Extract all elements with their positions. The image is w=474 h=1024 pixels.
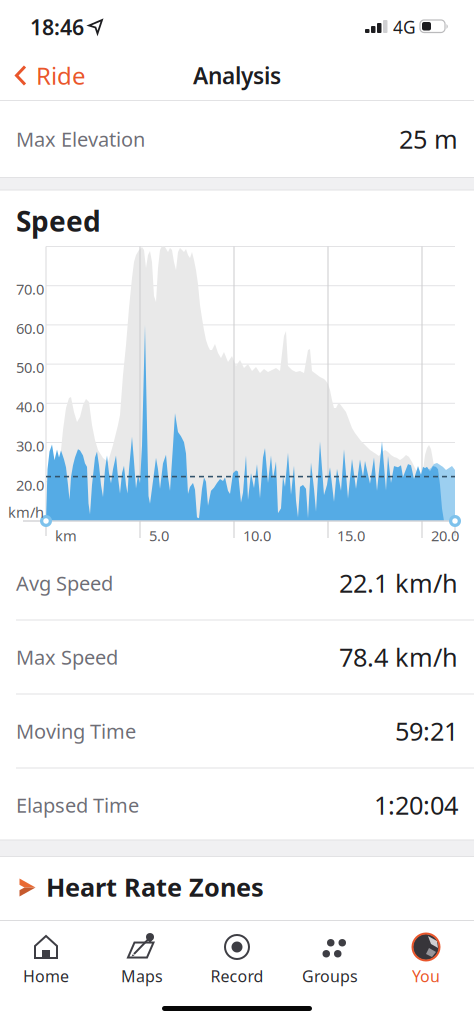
- button[interactable]: Ride: [0, 0, 110, 44]
- staticText: 10.0: [243, 526, 271, 545]
- staticText: 18:46: [30, 13, 84, 41]
- staticText: 59:21: [395, 714, 458, 748]
- staticText: 78.4 km/h: [339, 640, 458, 674]
- staticText: Max Elevation: [16, 126, 145, 152]
- staticText: Maps: [121, 965, 163, 987]
- staticText: Record: [210, 965, 263, 987]
- staticText: Ride: [36, 60, 86, 91]
- staticText: Analysis: [193, 60, 281, 90]
- staticText: 20.0: [431, 526, 459, 545]
- staticText: Moving Time: [16, 718, 136, 744]
- staticText: 50.0: [16, 358, 44, 377]
- staticText: 22.1 km/h: [339, 566, 458, 600]
- staticText: 5.0: [149, 526, 169, 545]
- staticText: 4G: [393, 15, 416, 38]
- staticText: 15.0: [337, 526, 365, 545]
- staticText: Groups: [302, 965, 358, 987]
- staticText: km: [55, 526, 77, 545]
- staticText: Speed: [16, 202, 101, 240]
- staticText: Avg Speed: [16, 570, 113, 596]
- staticText: Home: [23, 965, 69, 987]
- staticText: You: [412, 965, 440, 987]
- staticText: 25 m: [399, 122, 458, 156]
- staticText: Elapsed Time: [16, 792, 139, 818]
- staticText: 20.0: [16, 475, 44, 495]
- button[interactable]: Home: [8, 928, 84, 986]
- staticText: 70.0: [16, 279, 44, 299]
- button[interactable]: Groups: [292, 928, 368, 986]
- staticText: km/h: [8, 502, 44, 522]
- staticText: 30.0: [16, 436, 44, 456]
- staticText: 1:20:04: [374, 788, 458, 822]
- staticText: 40.0: [16, 397, 44, 416]
- staticText: Max Speed: [16, 644, 118, 670]
- button[interactable]: Maps: [104, 928, 180, 986]
- staticText: Heart Rate Zones: [46, 870, 264, 904]
- button[interactable]: You: [388, 928, 464, 986]
- staticText: 60.0: [16, 318, 44, 338]
- button[interactable]: Record: [199, 928, 275, 986]
- button[interactable]: Heart Rate Zones: [0, 0, 474, 64]
